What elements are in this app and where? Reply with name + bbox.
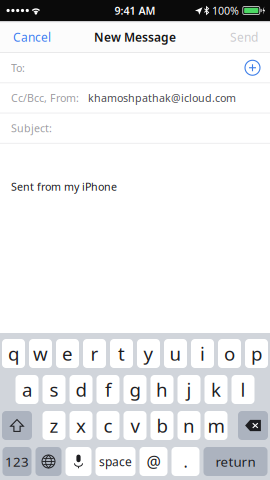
button[interactable]: z: [42, 411, 65, 440]
button[interactable]: m: [204, 411, 227, 440]
button[interactable]: l: [231, 375, 254, 404]
staticText: v: [130, 413, 139, 438]
button[interactable]: Shift: [2, 411, 32, 440]
button[interactable]: d: [69, 375, 92, 404]
button[interactable]: f: [96, 375, 119, 404]
button[interactable]: r: [83, 339, 106, 368]
staticText: khamoshpathak@icloud.com: [79, 91, 236, 105]
staticText: t: [118, 341, 125, 366]
button[interactable]: p: [245, 339, 268, 368]
staticText: d: [75, 377, 86, 402]
staticText: return: [215, 453, 255, 470]
button[interactable]: k: [204, 375, 227, 404]
staticText: e: [62, 341, 73, 366]
staticText: p: [251, 341, 262, 366]
staticText: c: [103, 413, 112, 438]
staticText: Sent from my iPhone: [11, 180, 117, 194]
staticText: k: [211, 377, 221, 402]
staticText: New Message: [94, 29, 176, 45]
staticText: h: [156, 377, 168, 402]
button[interactable]: u: [164, 339, 187, 368]
button[interactable]: c: [96, 411, 119, 440]
staticText: a: [22, 377, 32, 402]
button[interactable]: x: [69, 411, 92, 440]
staticText: 123: [5, 453, 29, 470]
button[interactable]: return: [203, 447, 267, 476]
button[interactable]: n: [177, 411, 200, 440]
button[interactable]: Delete: [238, 411, 268, 440]
staticText: space: [99, 453, 132, 469]
staticText: u: [169, 341, 181, 366]
staticText: Cc/Bcc, From:: [11, 91, 79, 105]
staticText: w: [33, 341, 48, 366]
button[interactable]: w: [29, 339, 52, 368]
button[interactable]: q: [2, 339, 25, 368]
button[interactable]: space: [95, 447, 135, 476]
staticText: .: [183, 451, 187, 472]
staticText: Send: [230, 29, 258, 45]
staticText: l: [240, 377, 245, 402]
staticText: Cancel: [13, 29, 51, 45]
staticText: m: [207, 413, 224, 438]
staticText: Subject:: [11, 121, 52, 135]
staticText: @: [146, 451, 160, 472]
button[interactable]: o: [218, 339, 241, 368]
button[interactable]: Send: [222, 21, 270, 53]
staticText: To:: [11, 61, 25, 75]
button[interactable]: Dictate: [65, 447, 91, 476]
button[interactable]: b: [150, 411, 173, 440]
staticText: 100%: [212, 3, 239, 18]
staticText: b: [156, 413, 167, 438]
button[interactable]: g: [123, 375, 146, 404]
button[interactable]: Add contact: [245, 60, 260, 75]
staticText: r: [90, 341, 98, 366]
staticText: j: [186, 377, 191, 402]
button[interactable]: @: [139, 447, 167, 476]
button[interactable]: h: [150, 375, 173, 404]
staticText: x: [76, 413, 86, 438]
staticText: g: [129, 377, 140, 402]
button[interactable]: e: [56, 339, 79, 368]
button[interactable]: i: [191, 339, 214, 368]
button[interactable]: s: [42, 375, 65, 404]
staticText: z: [49, 413, 58, 438]
staticText: f: [105, 377, 111, 402]
button[interactable]: 123: [2, 447, 31, 476]
button[interactable]: y: [137, 339, 160, 368]
staticText: y: [143, 341, 153, 366]
button[interactable]: Cancel: [0, 21, 59, 53]
staticText: n: [183, 413, 195, 438]
button[interactable]: a: [15, 375, 38, 404]
button[interactable]: t: [110, 339, 133, 368]
staticText: s: [49, 377, 58, 402]
button[interactable]: .: [171, 447, 199, 476]
staticText: q: [8, 341, 19, 366]
button[interactable]: j: [177, 375, 200, 404]
staticText: 9:41 AM: [114, 3, 155, 18]
button[interactable]: Next keyboard: [35, 447, 61, 476]
button[interactable]: v: [123, 411, 146, 440]
staticText: i: [200, 341, 205, 366]
staticText: o: [224, 341, 235, 366]
